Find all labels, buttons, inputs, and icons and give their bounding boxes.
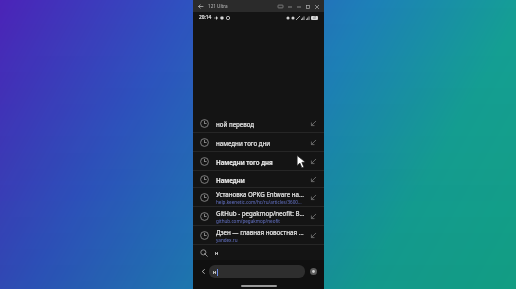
button[interactable]: Дзен — главная новостная ин… [193,226,324,245]
button[interactable]: Back [196,2,205,11]
button[interactable]: Намедни [193,171,324,188]
staticText: yandex.ru [216,237,238,243]
staticText: намедни того дни [216,139,271,147]
button[interactable]: Restore [294,2,303,11]
staticText: GitHub - pegakmop/neofit: В об… [216,209,305,217]
staticText: Намедни [216,176,245,184]
staticText: Установка OPKG Entware на вс… [216,190,305,198]
button[interactable]: Keyboard [276,2,285,11]
staticText: 41 [313,16,317,20]
button[interactable]: намедни того дни [193,133,324,152]
button[interactable]: Maximize [303,2,312,11]
button[interactable]: н [193,245,324,260]
button[interactable]: ной перевод [193,114,324,133]
staticText: Намедни того дня [216,158,273,166]
button[interactable]: Намедни того дня [193,152,324,171]
staticText: help.keenetic.com/hc/ru/articles/3600… [216,199,302,205]
button[interactable]: Clear [308,266,319,277]
button[interactable]: Minimize [285,2,294,11]
staticText: Дзен — главная новостная ин… [216,228,305,236]
staticText: 20:14 [199,14,212,21]
staticText: н [215,249,219,257]
button[interactable]: Close [312,2,321,11]
staticText: github.com/pegakmop/neofit [216,218,280,224]
button[interactable]: Back [198,266,209,277]
button[interactable]: Установка OPKG Entware на вс… [193,188,324,207]
button[interactable]: GitHub - pegakmop/neofit: В об… [193,207,324,226]
button[interactable]: н [209,265,305,278]
staticText: ной перевод [216,120,255,128]
staticText: н [213,268,217,276]
staticText: 121 Ultra [208,3,228,9]
